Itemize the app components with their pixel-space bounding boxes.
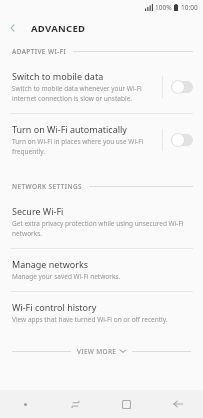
staticText: Secure Wi-Fi: [12, 205, 64, 217]
staticText: 10:00: [181, 3, 198, 12]
staticText: Wi-Fi control history: [12, 301, 97, 313]
staticText: VIEW MORE: [77, 347, 117, 356]
button[interactable]: Switch to mobile data: [0, 61, 203, 113]
staticText: Turn on Wi-Fi automatically: [12, 123, 127, 135]
staticText: Manage networks: [12, 258, 89, 270]
staticText: Turn on Wi-Fi in places where you use Wi…: [12, 137, 144, 146]
button[interactable]: Turn on Wi-Fi automatically: [0, 114, 203, 166]
staticText: Manage your saved Wi-Fi networks.: [12, 272, 121, 281]
staticText: networks.: [12, 229, 43, 238]
staticText: 100%: [155, 3, 172, 12]
staticText: Switch to mobile data whenever your Wi-F…: [12, 84, 142, 93]
staticText: Get extra privacy protection while using…: [12, 219, 184, 228]
staticText: NETWORK SETTINGS: [12, 182, 83, 191]
staticText: ADVANCED: [31, 22, 86, 35]
button[interactable]: Back: [0, 15, 26, 41]
staticText: frequently.: [12, 147, 45, 156]
button[interactable]: VIEW MORE: [0, 342, 203, 360]
button[interactable]: Switch to mobile data: [171, 80, 195, 94]
button[interactable]: Secure Wi-Fi: [0, 196, 203, 248]
staticText: View apps that have turned Wi-Fi on or o…: [12, 315, 168, 324]
staticText: ADAPTIVE WI-FI: [12, 47, 67, 56]
button[interactable]: Turn on Wi-Fi automatically: [171, 133, 195, 147]
button[interactable]: Recents: [50, 390, 101, 418]
button[interactable]: Manage networks: [0, 249, 203, 291]
staticText: Switch to mobile data: [12, 70, 104, 82]
button[interactable]: Home: [101, 390, 152, 418]
button[interactable]: Wi-Fi control history: [0, 292, 203, 334]
staticText: internet connection is slow or unstable.: [12, 94, 133, 103]
button[interactable]: Back: [152, 390, 203, 418]
button[interactable]: Show navigation buttons: [0, 390, 50, 418]
